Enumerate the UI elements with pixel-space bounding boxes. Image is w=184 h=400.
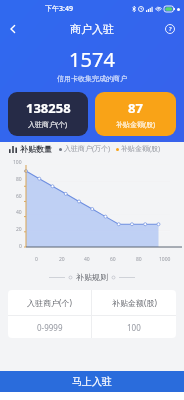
staticText: 入驻商户(万个)	[64, 144, 111, 154]
button[interactable]: Back	[3, 19, 23, 39]
staticText: 40	[16, 209, 22, 216]
staticText: 补贴规则	[76, 272, 108, 282]
staticText: 入驻商户(个)	[27, 297, 72, 308]
button[interactable]: 马上入驻	[0, 371, 184, 392]
staticText: ?	[169, 25, 172, 33]
staticText: 商户入驻	[70, 22, 114, 36]
staticText: 138258	[26, 99, 71, 117]
staticText: 补贴金额(股)	[112, 297, 157, 308]
button[interactable]: 87	[95, 92, 176, 136]
staticText: 0	[19, 243, 22, 250]
button[interactable]: Help	[161, 20, 179, 38]
staticText: 20	[16, 226, 22, 233]
staticText: 80	[16, 176, 22, 183]
staticText: 0-9999	[37, 322, 63, 333]
staticText: 60	[110, 256, 116, 263]
staticText: 信用卡收集完成的商户	[0, 74, 184, 83]
staticText: 100	[127, 322, 141, 333]
staticText: 87	[128, 99, 143, 117]
staticText: 补贴金额(股)	[121, 144, 161, 154]
staticText: 0	[35, 256, 38, 263]
staticText: 入驻商户(个)	[28, 120, 68, 130]
button[interactable]: 138258	[8, 92, 88, 136]
staticText: 补贴金额(股)	[116, 120, 156, 130]
staticText: 下午3:49	[45, 4, 73, 14]
staticText: 40	[84, 256, 90, 263]
staticText: 补贴数量	[20, 144, 52, 154]
staticText: 60	[16, 193, 22, 200]
staticText: 20	[59, 256, 65, 263]
staticText: 1000	[159, 256, 171, 263]
staticText: 1574	[0, 46, 184, 73]
staticText: 80	[136, 256, 142, 263]
staticText: 马上入驻	[72, 375, 112, 388]
staticText: 100	[13, 159, 22, 166]
